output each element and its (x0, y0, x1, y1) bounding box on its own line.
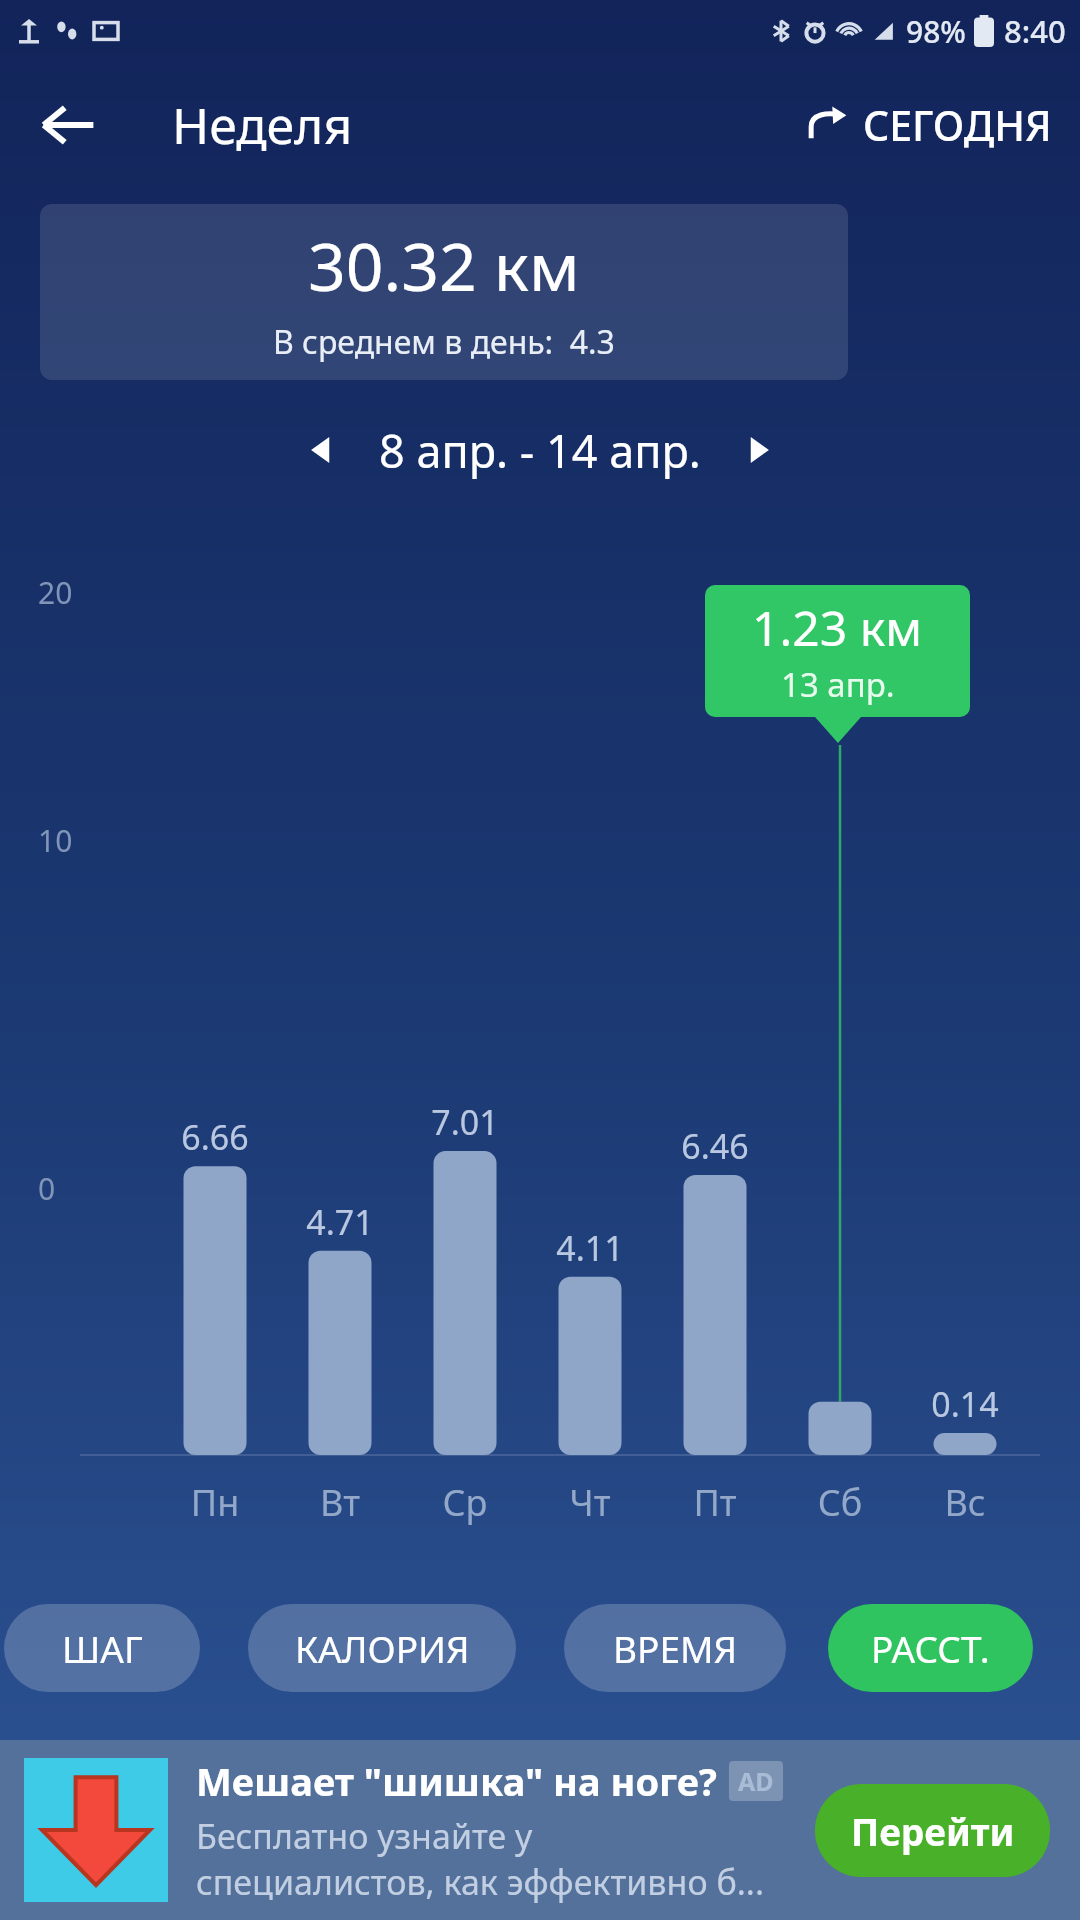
staticText: В среднем в день: 4.3 (273, 320, 615, 364)
staticText: СЕГОДНЯ (863, 97, 1052, 153)
staticText: 6.46 (660, 1123, 770, 1169)
staticText: Сб (785, 1478, 895, 1527)
staticText: AD (738, 1764, 774, 1798)
button[interactable]: Share (797, 89, 1060, 161)
staticText: Пн (160, 1478, 270, 1527)
staticText: 0 (38, 1168, 56, 1209)
staticText: Пт (660, 1478, 770, 1527)
staticText: Вс (910, 1478, 1020, 1527)
button[interactable]: Мешает "шишка" на ноге? (0, 1740, 1080, 1920)
staticText: 8:40 (1004, 10, 1066, 52)
staticText: 20 (38, 572, 73, 613)
staticText: 4.11 (535, 1225, 645, 1271)
button[interactable]: КАЛОРИЯ (248, 1604, 516, 1692)
staticText: Бесплатно узнайте у (196, 1813, 533, 1859)
staticText: 10 (38, 820, 73, 861)
staticText: ВРЕМЯ (613, 1623, 738, 1673)
staticText: Вт (285, 1478, 395, 1527)
button[interactable]: Previous week (289, 417, 355, 483)
staticText: Перейти (851, 1806, 1015, 1856)
staticText: 0.14 (910, 1381, 1020, 1427)
staticText: 4.71 (285, 1199, 395, 1245)
button[interactable]: 30.32 км (40, 204, 848, 380)
staticText: КАЛОРИЯ (295, 1623, 470, 1673)
other: Share (805, 103, 849, 147)
staticText: Неделя (172, 91, 353, 159)
button[interactable]: 1.23 км (705, 585, 970, 717)
button[interactable]: Перейти (815, 1784, 1050, 1877)
button[interactable]: Back (28, 85, 108, 165)
staticText: 7.01 (410, 1099, 520, 1145)
button[interactable]: РАССТ. (828, 1604, 1033, 1692)
staticText: Чт (535, 1478, 645, 1527)
staticText: 1.23 км (752, 595, 923, 660)
staticText: 6.66 (160, 1114, 270, 1160)
staticText: РАССТ. (871, 1623, 990, 1673)
staticText: 30.32 км (308, 220, 580, 310)
staticText: Ср (410, 1478, 520, 1527)
staticText: Мешает "шишка" на ноге? (196, 1755, 717, 1807)
button[interactable]: ВРЕМЯ (564, 1604, 786, 1692)
staticText: 8 апр. - 14 апр. (379, 420, 701, 481)
staticText: ШАГ (62, 1623, 143, 1673)
staticText: 13 апр. (781, 662, 895, 707)
button[interactable]: Next week (725, 417, 791, 483)
button[interactable]: ШАГ (4, 1604, 200, 1692)
staticText: 98% (906, 11, 966, 52)
staticText: специалистов, как эффективно б... (196, 1859, 765, 1905)
